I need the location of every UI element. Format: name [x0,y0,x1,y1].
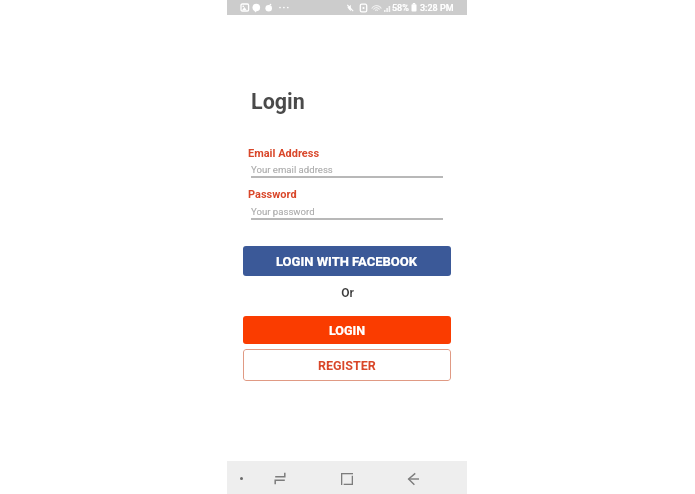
button[interactable]: Back [405,470,422,487]
staticText: Login [251,89,305,114]
staticText: 58% [392,3,409,14]
button[interactable]: Your password [251,204,443,220]
staticText: Or [341,286,354,300]
staticText: Your email address [251,164,333,175]
staticText: 3:28 PM [420,3,454,14]
button[interactable]: LOGIN [243,316,451,344]
button[interactable]: Your email address [251,162,443,178]
staticText: LOGIN [329,323,365,338]
staticText: Your password [251,206,315,217]
button[interactable]: REGISTER [243,349,451,381]
button[interactable]: Recent apps [271,470,288,487]
staticText: LOGIN WITH FACEBOOK [276,254,418,269]
button[interactable]: LOGIN WITH FACEBOOK [243,246,451,276]
button[interactable]: Home [338,470,355,487]
staticText: Email Address [248,147,320,160]
staticText: REGISTER [318,358,376,373]
staticText: Password [248,188,297,201]
button[interactable]: Menu [233,470,250,487]
